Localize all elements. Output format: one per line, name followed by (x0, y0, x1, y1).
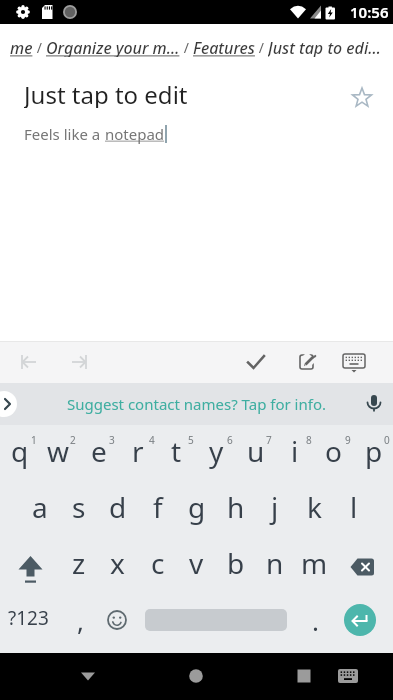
staticText: 6 (227, 433, 233, 447)
button[interactable]: l (334, 479, 373, 535)
button[interactable] (67, 350, 91, 374)
staticText: 9 (345, 433, 351, 447)
staticText: me (10, 37, 33, 57)
button[interactable] (362, 392, 386, 416)
button[interactable] (98, 594, 135, 646)
button[interactable]: k (295, 479, 334, 535)
button[interactable] (76, 664, 100, 688)
staticText: . (312, 603, 319, 638)
button[interactable]: ?123 (5, 592, 51, 644)
button[interactable]: Features (193, 37, 255, 57)
staticText: 0 (384, 433, 390, 447)
staticText: x (110, 544, 125, 582)
staticText: l (350, 488, 358, 526)
staticText: t (171, 432, 182, 470)
staticText: 8 (306, 433, 312, 447)
button[interactable]: Organize your m… (46, 37, 180, 57)
button[interactable] (342, 350, 366, 374)
staticText: n (266, 544, 284, 582)
staticText: d (109, 488, 127, 526)
button[interactable]: o (314, 423, 353, 479)
staticText: , (77, 603, 84, 638)
staticText: u (247, 432, 265, 470)
button[interactable]: i (275, 423, 314, 479)
staticText: Organize your m… (46, 37, 180, 57)
button[interactable]: t (157, 423, 196, 479)
staticText: notepad (105, 124, 165, 144)
staticText: f (153, 488, 163, 526)
button[interactable] (292, 664, 316, 688)
staticText: v (189, 544, 204, 582)
button[interactable]: x (98, 535, 137, 591)
button[interactable]: a (20, 479, 59, 535)
staticText: Feels like a (24, 124, 105, 144)
button[interactable]: p (354, 423, 393, 479)
staticText: Features (193, 37, 255, 57)
staticText: r (132, 432, 144, 470)
button[interactable] (184, 664, 208, 688)
button[interactable]: f (138, 479, 177, 535)
button[interactable]: b (216, 535, 255, 591)
staticText: e (91, 432, 107, 470)
button[interactable]: me (10, 37, 33, 57)
button[interactable]: d (98, 479, 137, 535)
staticText: q (11, 432, 29, 470)
staticText: b (227, 544, 245, 582)
staticText: w (47, 432, 70, 470)
button[interactable]: y (197, 423, 236, 479)
staticText: k (307, 488, 322, 526)
button[interactable]: g (177, 479, 216, 535)
button[interactable] (17, 350, 41, 374)
button[interactable] (0, 391, 17, 417)
button[interactable] (350, 86, 374, 110)
staticText: a (32, 488, 48, 526)
button[interactable]: w (39, 423, 78, 479)
staticText: 5 (188, 433, 194, 447)
button[interactable]: , (62, 594, 98, 646)
button[interactable]: u (236, 423, 275, 479)
staticText: m (301, 544, 328, 582)
staticText: 10:56 (350, 2, 389, 22)
staticText: y (209, 432, 224, 470)
button[interactable] (344, 604, 376, 636)
button[interactable]: n (255, 535, 294, 591)
button[interactable]: s (59, 479, 98, 535)
button[interactable]: z (59, 535, 98, 591)
staticText: ?123 (8, 605, 49, 631)
button[interactable]: j (255, 479, 294, 535)
staticText: Suggest contact names? Tap for info. (67, 394, 326, 414)
button[interactable] (244, 350, 268, 374)
staticText: 4 (149, 433, 155, 447)
staticText: h (227, 488, 245, 526)
staticText: / (33, 38, 46, 57)
button[interactable]: r (118, 423, 157, 479)
button[interactable]: q (0, 423, 39, 479)
button[interactable]: e (79, 423, 118, 479)
button[interactable] (8, 547, 53, 585)
staticText: i (291, 432, 299, 470)
staticText: g (188, 488, 206, 526)
button[interactable]: Suggest contact names? Tap for info. (0, 383, 393, 425)
staticText: 2 (70, 433, 76, 447)
staticText: 1 (31, 433, 37, 447)
button[interactable] (336, 664, 360, 688)
button[interactable]: . (297, 594, 333, 646)
staticText: z (72, 544, 86, 582)
staticText: Just tap to edit (24, 78, 188, 108)
staticText: 7 (266, 433, 272, 447)
staticText: s (72, 488, 86, 526)
staticText: p (365, 432, 383, 470)
button[interactable]: c (138, 535, 177, 591)
staticText: / (255, 38, 268, 57)
button[interactable]: m (295, 535, 334, 591)
staticText: / (180, 38, 193, 57)
staticText: o (325, 432, 342, 470)
button[interactable]: h (216, 479, 255, 535)
staticText: 3 (109, 433, 115, 447)
button[interactable] (342, 549, 382, 585)
staticText: Just tap to edi… (268, 37, 381, 57)
staticText: j (271, 488, 279, 526)
button[interactable] (296, 350, 320, 374)
button[interactable]: v (177, 535, 216, 591)
